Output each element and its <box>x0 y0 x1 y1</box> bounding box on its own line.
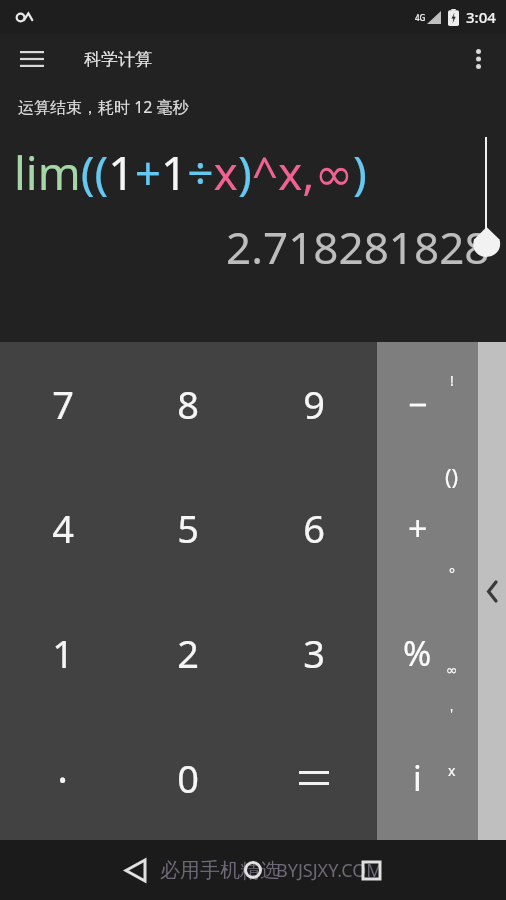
button[interactable]: − <box>377 342 478 466</box>
staticText: x <box>448 761 456 780</box>
staticText: () <box>445 461 459 491</box>
button[interactable]: Expand panel <box>478 342 506 840</box>
button[interactable]: ' <box>436 697 468 729</box>
button[interactable]: ! <box>436 364 468 396</box>
staticText: i <box>413 755 422 801</box>
button[interactable]: Home <box>227 844 279 896</box>
button[interactable]: + <box>377 466 478 590</box>
button[interactable]: 4 <box>0 466 125 590</box>
staticText: ∞ <box>446 662 458 678</box>
staticText: + <box>408 505 428 551</box>
staticText: 8 <box>177 378 199 430</box>
button[interactable]: 6 <box>251 466 377 590</box>
button[interactable]: 9 <box>251 342 377 466</box>
button[interactable]: 0 <box>125 715 251 840</box>
button[interactable]: 5 <box>125 466 251 590</box>
staticText: 3:04 <box>466 7 496 27</box>
staticText: 3 <box>303 627 325 679</box>
button[interactable]: 3 <box>251 590 377 715</box>
staticText: lim((1+1÷x)^x,∞) <box>14 141 367 204</box>
staticText: ' <box>450 704 454 723</box>
button[interactable]: 2 <box>125 590 251 715</box>
button[interactable]: % <box>377 590 478 715</box>
staticText: − <box>408 381 428 427</box>
staticText: BYJSJXY.COM <box>276 858 383 883</box>
staticText: % <box>403 630 432 676</box>
staticText: 7 <box>52 378 74 430</box>
staticText: 1 <box>52 627 74 679</box>
button[interactable]: Back <box>109 844 161 896</box>
staticText: · <box>57 751 68 805</box>
button[interactable]: ∞ <box>436 654 468 686</box>
staticText: ! <box>450 371 454 390</box>
staticText: 运算结束，耗时 12 毫秒 <box>18 96 189 118</box>
button[interactable]: ° <box>436 557 468 589</box>
staticText: 2.718281828 <box>226 217 490 277</box>
staticText: 必用手机精选 <box>160 858 280 883</box>
staticText: 0 <box>177 752 199 804</box>
button[interactable]: Menu <box>10 37 54 81</box>
staticText: 科学计算 <box>84 49 152 70</box>
button[interactable]: 8 <box>125 342 251 466</box>
staticText: 4 <box>52 502 74 554</box>
staticText: 9 <box>303 378 325 430</box>
button[interactable]: More options <box>456 37 500 81</box>
button[interactable]: Recents <box>345 844 397 896</box>
button[interactable] <box>251 715 377 840</box>
staticText: ° <box>449 564 455 583</box>
staticText: 5 <box>177 502 199 554</box>
button[interactable]: () <box>436 460 468 492</box>
staticText: 2 <box>177 627 199 679</box>
button[interactable]: 1 <box>0 590 125 715</box>
staticText: 6 <box>303 502 325 554</box>
staticText: 4G <box>415 12 426 23</box>
button[interactable]: · <box>0 715 125 840</box>
button[interactable]: 7 <box>0 342 125 466</box>
button[interactable]: i <box>377 715 478 840</box>
button[interactable]: x <box>436 754 468 786</box>
